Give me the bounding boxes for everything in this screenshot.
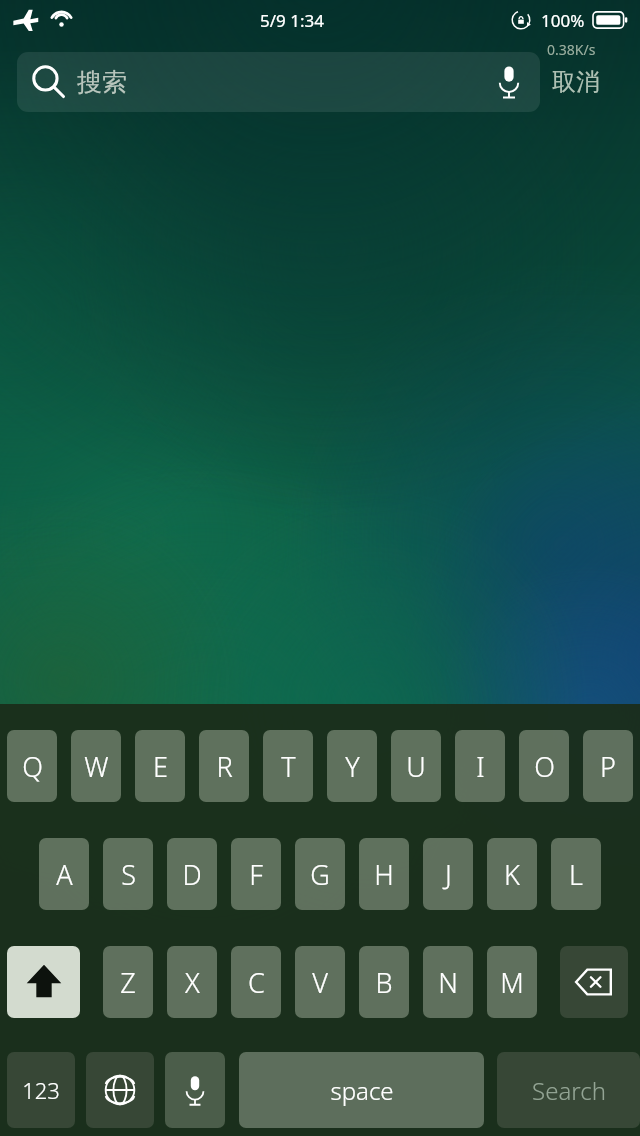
staticText: D (182, 856, 202, 893)
button[interactable]: Shift (7, 946, 80, 1018)
button[interactable]: U (391, 730, 441, 802)
button[interactable]: G (295, 838, 345, 910)
button[interactable]: F (231, 838, 281, 910)
staticText: G (310, 856, 330, 893)
button[interactable]: K (487, 838, 537, 910)
button[interactable]: A (39, 838, 89, 910)
button[interactable]: Y (327, 730, 377, 802)
button[interactable]: space (239, 1052, 484, 1128)
staticText: E (153, 748, 168, 785)
staticText: R (216, 748, 233, 785)
staticText: B (375, 964, 393, 1001)
staticText: T (281, 748, 296, 785)
button[interactable]: Dictation (165, 1052, 225, 1128)
staticText: X (185, 964, 200, 1001)
staticText: S (121, 856, 136, 893)
button[interactable]: 取消 (548, 61, 604, 103)
staticText: Q (22, 748, 43, 785)
button[interactable]: L (551, 838, 601, 910)
button[interactable]: N (423, 946, 473, 1018)
button[interactable]: Z (103, 946, 153, 1018)
button[interactable]: O (519, 730, 569, 802)
staticText: V (312, 964, 328, 1001)
staticText: 123 (22, 1075, 60, 1105)
staticText: Y (345, 748, 360, 785)
staticText: Search (532, 1074, 606, 1107)
button[interactable]: Q (7, 730, 57, 802)
button[interactable]: B (359, 946, 409, 1018)
staticText: A (56, 856, 73, 893)
button[interactable]: Search (497, 1052, 640, 1128)
button[interactable]: C (231, 946, 281, 1018)
button[interactable]: Dictation (484, 57, 534, 107)
button[interactable]: E (135, 730, 185, 802)
staticText: 搜索 (77, 67, 127, 98)
staticText: Z (120, 964, 136, 1001)
staticText: space (330, 1074, 394, 1107)
staticText: L (569, 856, 583, 893)
staticText: 5/9 1:34 (260, 9, 324, 32)
staticText: U (406, 748, 426, 785)
button[interactable]: 123 (7, 1052, 75, 1128)
staticText: O (534, 748, 555, 785)
button[interactable]: 搜索 (17, 52, 540, 112)
button[interactable]: D (167, 838, 217, 910)
button[interactable]: Backspace (560, 946, 628, 1018)
button[interactable]: X (167, 946, 217, 1018)
staticText: I (476, 748, 485, 785)
button[interactable]: S (103, 838, 153, 910)
button[interactable]: H (359, 838, 409, 910)
staticText: 100% (541, 9, 585, 32)
staticText: 取消 (552, 67, 600, 97)
button[interactable]: Change keyboard (86, 1052, 154, 1128)
button[interactable]: T (263, 730, 313, 802)
staticText: K (504, 856, 520, 893)
button[interactable]: M (487, 946, 537, 1018)
staticText: N (438, 964, 458, 1001)
button[interactable]: W (71, 730, 121, 802)
button[interactable]: I (455, 730, 505, 802)
button[interactable]: R (199, 730, 249, 802)
staticText: C (248, 964, 265, 1001)
staticText: J (445, 856, 452, 893)
staticText: W (84, 748, 109, 785)
button[interactable]: V (295, 946, 345, 1018)
staticText: H (374, 856, 394, 893)
staticText: P (600, 748, 616, 785)
staticText: M (500, 964, 524, 1001)
button[interactable]: P (583, 730, 633, 802)
staticText: 0.38K/s (547, 40, 596, 59)
button[interactable]: J (423, 838, 473, 910)
staticText: F (249, 856, 263, 893)
